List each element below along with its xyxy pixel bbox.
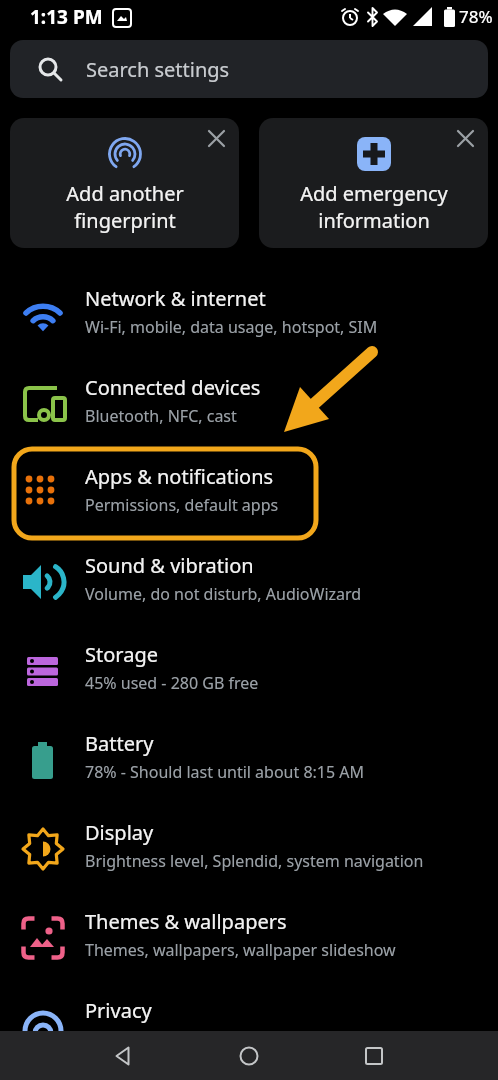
staticText: Search settings: [86, 56, 230, 83]
button[interactable]: Privacy: [0, 982, 498, 1071]
staticText: Sound & vibration: [85, 552, 254, 579]
button[interactable]: Storage: [0, 626, 498, 715]
staticText: 45% used - 280 GB free: [85, 672, 259, 694]
button[interactable]: Add emergency information: [259, 118, 488, 248]
button[interactable]: Network & internet: [0, 270, 498, 359]
button[interactable]: Battery: [0, 715, 498, 804]
staticText: Network & internet: [85, 285, 266, 312]
staticText: 78%: [459, 5, 493, 28]
staticText: Apps & notifications: [85, 463, 274, 490]
staticText: Permissions, default apps: [85, 494, 279, 516]
button[interactable]: [99, 1031, 149, 1080]
staticText: Permissions, account activity: [85, 1028, 302, 1050]
button[interactable]: Themes & wallpapers: [0, 893, 498, 982]
staticText: Storage: [85, 641, 158, 668]
staticText: Themes & wallpapers: [85, 908, 287, 935]
staticText: Brightness level, Splendid, system navig…: [85, 850, 424, 872]
button[interactable]: [224, 1031, 274, 1080]
button[interactable]: Search settings: [10, 40, 488, 98]
staticText: Connected devices: [85, 374, 261, 401]
staticText: 78% - Should last until about 8:15 AM: [85, 761, 365, 783]
staticText: Bluetooth, NFC, cast: [85, 405, 237, 427]
button[interactable]: Add another fingerprint: [10, 118, 239, 248]
staticText: Display: [85, 819, 154, 846]
button[interactable]: Display: [0, 804, 498, 893]
staticText: Themes, wallpapers, wallpaper slideshow: [85, 939, 396, 961]
button[interactable]: [349, 1031, 399, 1080]
staticText: Add another fingerprint: [25, 180, 225, 234]
staticText: Add emergency information: [274, 180, 474, 234]
staticText: 1:13 PM: [30, 4, 103, 30]
button[interactable]: Connected devices: [0, 359, 498, 448]
button[interactable]: Apps & notifications: [0, 448, 498, 537]
staticText: Privacy: [85, 997, 152, 1024]
staticText: Volume, do not disturb, AudioWizard: [85, 583, 362, 605]
staticText: Battery: [85, 730, 154, 757]
staticText: Wi-Fi, mobile, data usage, hotspot, SIM: [85, 316, 378, 338]
button[interactable]: Sound & vibration: [0, 537, 498, 626]
